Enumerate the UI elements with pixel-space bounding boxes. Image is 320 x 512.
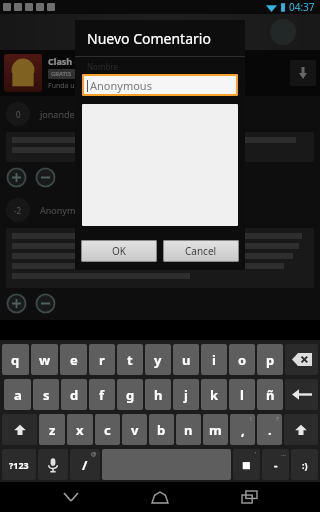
- button[interactable]: ': [233, 449, 260, 480]
- staticText: Nuevo Comentario: [87, 29, 211, 48]
- button[interactable]: r: [89, 344, 115, 375]
- button[interactable]: y: [145, 344, 171, 375]
- button[interactable]: [35, 293, 56, 314]
- staticText: 04:37: [289, 0, 315, 14]
- button[interactable]: e: [60, 344, 87, 375]
- staticText: ■: [242, 460, 251, 470]
- staticText: /: [82, 456, 88, 474]
- button[interactable]: Cancel: [163, 240, 239, 262]
- staticText: u: [182, 351, 191, 369]
- button[interactable]: h: [145, 379, 171, 410]
- button[interactable]: l: [229, 379, 255, 410]
- button[interactable]: OK: [81, 240, 157, 262]
- button[interactable]: g: [117, 379, 143, 410]
- button[interactable]: k: [201, 379, 227, 410]
- staticText: q: [11, 351, 20, 369]
- button[interactable]: v: [122, 414, 147, 445]
- button[interactable]: m: [203, 414, 228, 445]
- button[interactable]: z: [39, 414, 65, 445]
- button[interactable]: x: [67, 414, 93, 445]
- staticText: -2: [14, 205, 22, 216]
- button[interactable]: Emoji: [291, 449, 318, 480]
- button[interactable]: t: [117, 344, 143, 375]
- button[interactable]: Recent apps: [231, 482, 267, 512]
- staticText: Funda una aldea y entrena tropas. ¡Juega…: [48, 81, 246, 91]
- button[interactable]: !: [230, 414, 255, 445]
- button[interactable]: q: [2, 344, 29, 375]
- staticText: GRATIS: [51, 70, 72, 78]
- staticText: Foro: [4, 2, 21, 13]
- staticText: Cancel: [185, 244, 217, 258]
- staticText: l: [240, 386, 244, 404]
- button[interactable]: ñ: [257, 379, 283, 410]
- button[interactable]: …: [262, 449, 289, 480]
- button[interactable]: Anonymous: [82, 74, 238, 96]
- staticText: z: [49, 421, 56, 439]
- staticText: ,: [241, 421, 245, 439]
- staticText: Nombre: [87, 61, 118, 72]
- button[interactable]: Voice input: [38, 449, 68, 480]
- button[interactable]: Home: [142, 482, 178, 512]
- button[interactable]: Profile: [270, 19, 296, 45]
- staticText: @: [91, 450, 97, 458]
- button[interactable]: Hide keyboard: [53, 482, 89, 512]
- button[interactable]: i: [201, 344, 227, 375]
- staticText: …: [281, 450, 286, 458]
- button[interactable]: Shift: [2, 414, 37, 445]
- staticText: j: [184, 386, 188, 404]
- button[interactable]: Enter: [285, 379, 318, 410]
- staticText: f: [99, 386, 105, 404]
- staticText: o: [238, 351, 247, 369]
- staticText: w: [39, 351, 51, 369]
- button[interactable]: Backspace: [285, 344, 318, 375]
- staticText: .: [268, 421, 272, 439]
- staticText: v: [131, 421, 139, 439]
- button[interactable]: u: [173, 344, 199, 375]
- button[interactable]: o: [229, 344, 255, 375]
- staticText: b: [157, 421, 166, 439]
- button[interactable]: s: [33, 379, 59, 410]
- button[interactable]: w: [31, 344, 58, 375]
- staticText: 0: [16, 109, 21, 120]
- button[interactable]: [35, 167, 56, 188]
- staticText: jonander: [40, 108, 79, 120]
- staticText: a: [14, 386, 22, 404]
- staticText: r: [99, 351, 105, 369]
- button[interactable]: ?: [257, 414, 282, 445]
- button[interactable]: b: [149, 414, 174, 445]
- staticText: ?123: [9, 459, 29, 471]
- staticText: Anonymous: [90, 78, 152, 93]
- staticText: -: [274, 457, 278, 472]
- staticText: m: [209, 421, 222, 439]
- button[interactable]: p: [257, 344, 283, 375]
- staticText: p: [266, 351, 275, 369]
- button[interactable]: Install: [290, 60, 316, 86]
- button[interactable]: @: [70, 449, 100, 480]
- staticText: ?: [276, 415, 279, 423]
- button[interactable]: Shift: [284, 414, 318, 445]
- staticText: k: [210, 386, 219, 404]
- button[interactable]: [6, 167, 27, 188]
- staticText: c: [104, 421, 111, 439]
- staticText: g: [126, 386, 135, 404]
- staticText: OK: [112, 244, 126, 258]
- staticText: Anfetamina: [130, 25, 191, 40]
- button[interactable]: [6, 293, 27, 314]
- staticText: i: [212, 351, 216, 369]
- button[interactable]: j: [173, 379, 199, 410]
- staticText: t: [127, 351, 133, 369]
- staticText: Anonymous: [40, 204, 91, 216]
- staticText: Play: [79, 69, 93, 79]
- button[interactable]: n: [176, 414, 201, 445]
- staticText: :): [302, 459, 308, 471]
- button[interactable]: a: [4, 379, 31, 410]
- staticText: ': [255, 450, 257, 458]
- button[interactable]: ?123: [2, 449, 36, 480]
- button[interactable]: d: [61, 379, 87, 410]
- button[interactable]: f: [89, 379, 115, 410]
- staticText: x: [76, 421, 84, 439]
- button[interactable]: c: [95, 414, 120, 445]
